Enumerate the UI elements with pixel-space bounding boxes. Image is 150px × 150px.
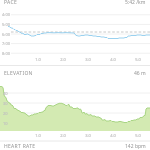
- staticText: 3.0: [82, 57, 94, 62]
- staticText: 4.0: [107, 133, 119, 138]
- staticText: 10: [3, 121, 8, 126]
- button[interactable]: HEART RATE: [0, 143, 150, 150]
- staticText: 3.0: [82, 133, 94, 138]
- staticText: 5.0: [132, 133, 144, 138]
- staticText: 5.0: [132, 57, 144, 62]
- staticText: 30: [3, 101, 8, 106]
- staticText: ELEVATION: [4, 70, 33, 77]
- staticText: 2.0: [57, 57, 69, 62]
- staticText: 2.0: [57, 133, 69, 138]
- staticText: 8:00: [0, 51, 10, 56]
- staticText: 40: [3, 91, 8, 96]
- staticText: 20: [3, 111, 8, 116]
- staticText: 7:00: [0, 41, 10, 46]
- staticText: 5:00: [0, 22, 10, 27]
- staticText: 4.0: [107, 57, 119, 62]
- staticText: 5:42 /km: [125, 0, 146, 6]
- staticText: HEART RATE: [4, 143, 36, 150]
- staticText: 142 bpm: [125, 143, 146, 150]
- staticText: 4:00: [0, 12, 10, 17]
- staticText: 1.0: [32, 57, 44, 62]
- button[interactable]: PACE: [0, 0, 150, 6]
- staticText: PACE: [4, 0, 18, 6]
- staticText: 46 m: [134, 70, 146, 77]
- staticText: 6:00: [0, 32, 10, 37]
- button[interactable]: ELEVATION: [0, 68, 150, 79]
- staticText: 1.0: [32, 133, 44, 138]
